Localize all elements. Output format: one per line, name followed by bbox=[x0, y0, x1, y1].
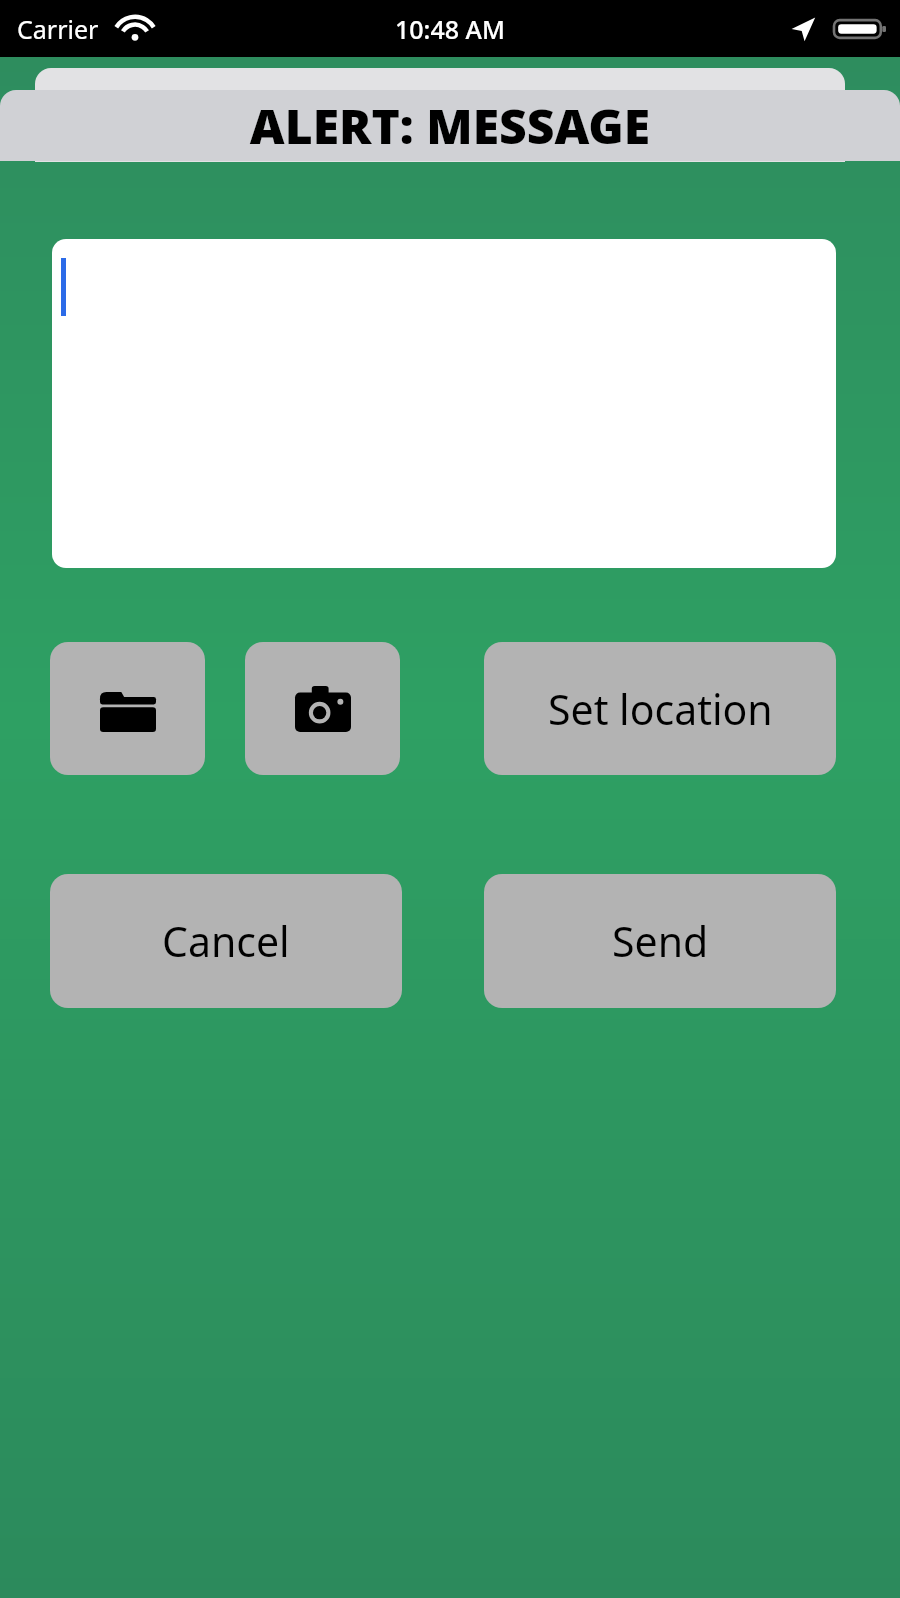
staticText: Set location bbox=[548, 681, 773, 737]
staticText: Cancel bbox=[162, 913, 290, 969]
staticText: 10:48 AM bbox=[395, 12, 505, 46]
button[interactable]: Attach file bbox=[50, 642, 205, 775]
staticText: Carrier bbox=[17, 12, 99, 46]
staticText: ALERT: MESSAGE bbox=[0, 93, 900, 158]
button[interactable]: Cancel bbox=[50, 874, 402, 1008]
button[interactable]: Message text field bbox=[52, 239, 836, 568]
button[interactable]: Set location bbox=[484, 642, 836, 775]
staticText: Send bbox=[612, 913, 709, 969]
button[interactable]: Send bbox=[484, 874, 836, 1008]
button[interactable]: Take photo bbox=[245, 642, 400, 775]
